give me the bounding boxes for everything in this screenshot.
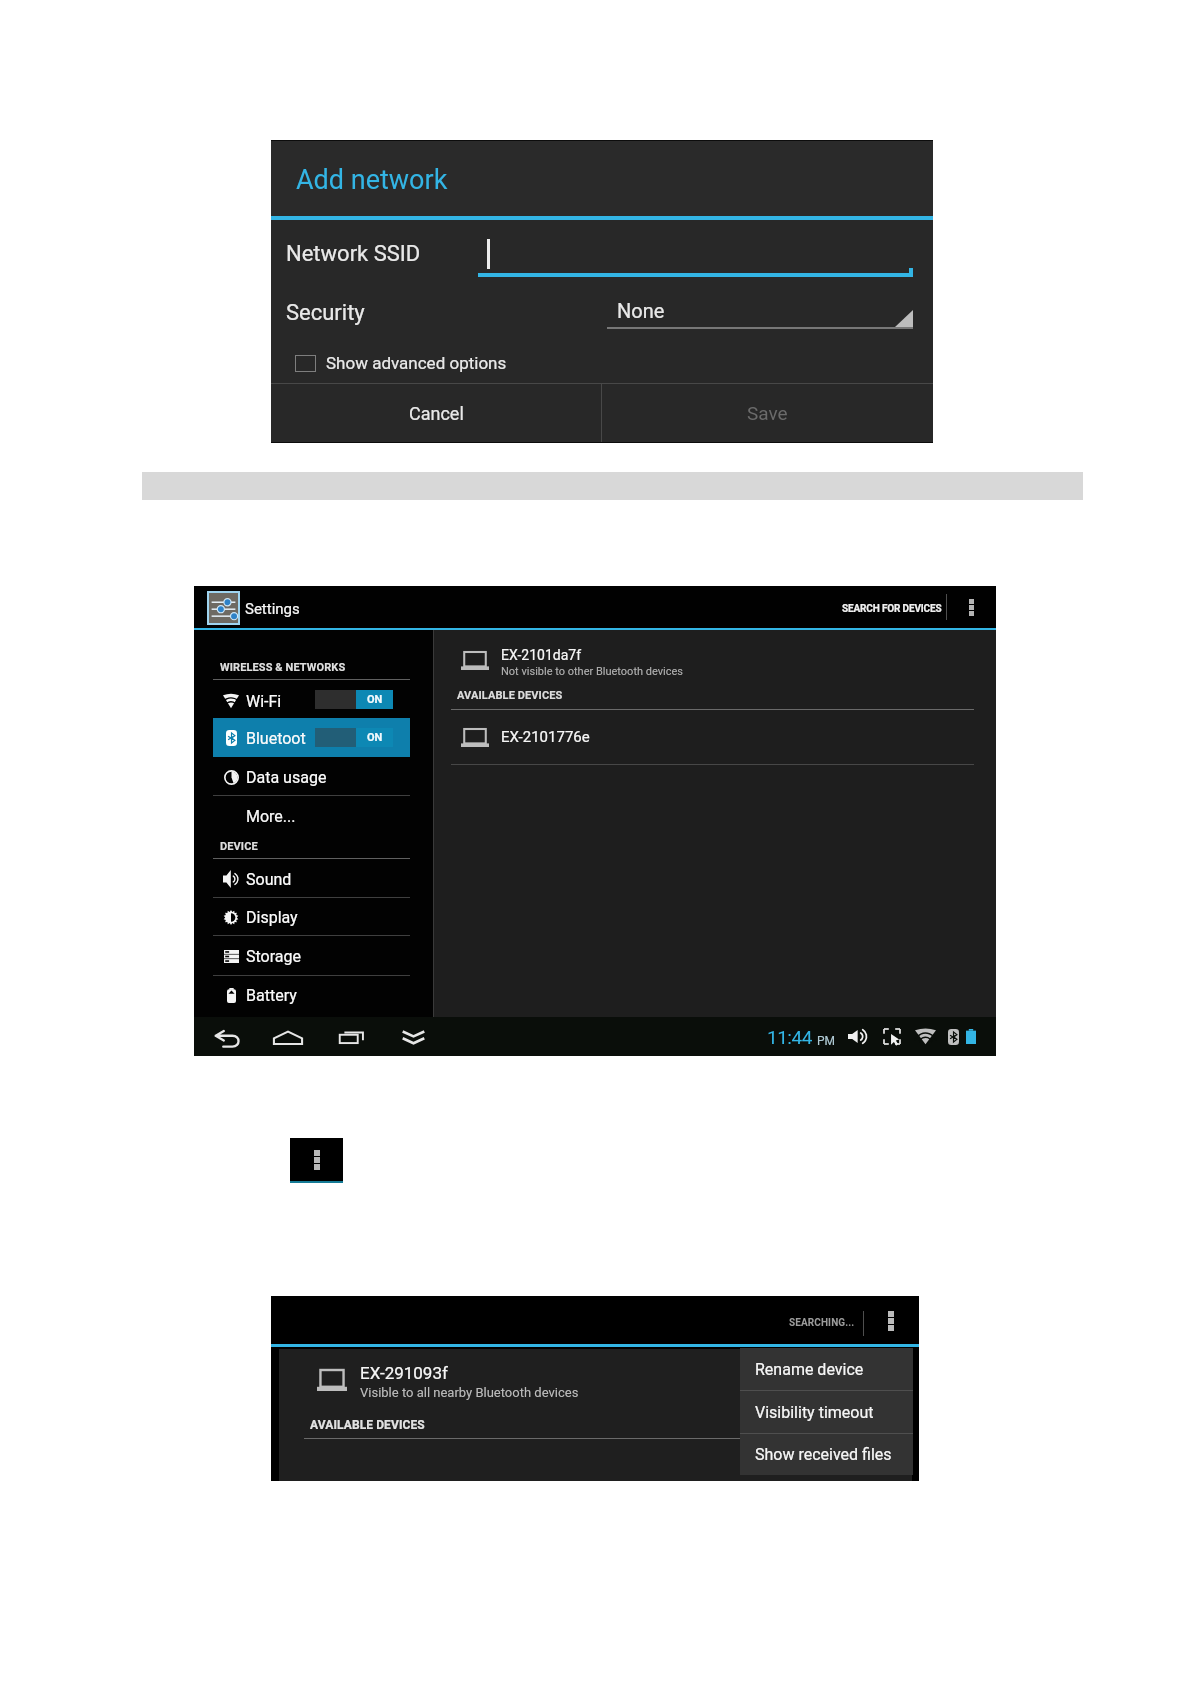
staticText: Save [747,402,788,424]
button[interactable]: Recents [333,1019,372,1054]
staticText: Sound [246,870,292,889]
staticText: Show received files [755,1445,892,1464]
button[interactable]: Save [602,384,933,442]
button[interactable]: Show advanced options [295,350,507,376]
button[interactable]: Data usage [213,758,410,796]
staticText: Settings [245,600,300,618]
button[interactable]: Bluetooth on [315,728,393,747]
button[interactable] [434,712,996,760]
button[interactable]: Bluetooth [213,719,410,757]
staticText: PM [817,1034,836,1048]
staticText: Rename device [755,1360,864,1379]
button[interactable] [213,718,410,757]
button[interactable]: Home [267,1019,309,1054]
button[interactable]: Back [208,1019,245,1054]
staticText: Cancel [409,403,464,424]
button[interactable]: Wi-Fi on [315,690,393,709]
staticText: EX-2101da7f [501,647,582,663]
button[interactable]: More options [954,590,988,624]
button[interactable]: SEARCHING... [782,1306,862,1340]
staticText: More... [246,807,296,826]
staticText: Storage [246,947,301,966]
staticText: EX-2101776e [501,728,590,746]
button[interactable] [434,634,996,678]
button[interactable]: Wi-Fi [213,682,410,720]
button[interactable]: Rename device [740,1348,913,1390]
staticText: AVAILABLE DEVICES [310,1418,425,1432]
button[interactable]: None [607,296,913,330]
staticText: Bluetooth [246,729,307,748]
staticText: Visibility timeout [755,1403,874,1422]
button[interactable]: Visibility timeout [740,1391,913,1433]
staticText: Visible to all nearby Bluetooth devices [360,1385,579,1400]
button[interactable]: Storage [213,937,410,975]
staticText: Data usage [246,768,327,787]
staticText: Add network [296,164,448,196]
staticText: ON [367,731,383,744]
staticText: EX-291093f [360,1363,448,1383]
staticText: SEARCHING... [789,1317,855,1329]
button[interactable] [478,237,913,277]
staticText: WIRELESS & NETWORKS [220,661,346,674]
button[interactable]: More options [290,1138,343,1182]
staticText: Show advanced options [326,353,507,373]
button[interactable] [278,1354,912,1402]
button[interactable]: SEARCH FOR DEVICES [836,592,948,626]
staticText: Display [246,908,298,927]
button[interactable]: More... [213,797,410,835]
staticText: Not visible to other Bluetooth devices [501,665,684,678]
button[interactable]: Cancel [271,384,601,442]
staticText: AVAILABLE DEVICES [457,689,563,702]
staticText: Network SSID [286,241,421,267]
staticText: ON [367,693,383,706]
staticText: Security [286,300,365,326]
staticText: SEARCH FOR DEVICES [842,603,942,615]
button[interactable]: More options [873,1304,909,1338]
staticText: 11:44 [767,1026,812,1048]
button[interactable]: Display [213,898,410,936]
staticText: Wi-Fi [246,692,282,711]
button[interactable]: Battery [213,976,410,1014]
staticText: DEVICE [220,840,258,853]
button[interactable]: Settings [207,591,240,625]
button[interactable]: Sound [213,860,410,898]
staticText: None [617,299,665,322]
staticText: Battery [246,986,297,1005]
button[interactable]: Notifications [395,1019,432,1054]
button[interactable]: Show received files [740,1434,913,1475]
